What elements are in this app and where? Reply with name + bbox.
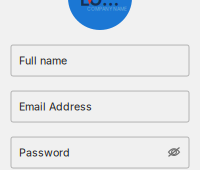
button[interactable]: Email Address [11, 91, 189, 122]
staticText: COMPANY NAME [87, 6, 127, 12]
button[interactable]: Password [11, 137, 189, 168]
staticText: Password [19, 146, 70, 159]
button[interactable]: Password [11, 137, 189, 168]
staticText: LOGO [80, 0, 126, 10]
button[interactable]: Show password [163, 141, 185, 163]
button[interactable]: Email Address [11, 91, 189, 122]
button[interactable]: Full name [11, 45, 189, 76]
staticText: Full name [19, 54, 67, 67]
staticText: Email Address [19, 100, 92, 113]
button[interactable]: Full name [11, 45, 189, 76]
